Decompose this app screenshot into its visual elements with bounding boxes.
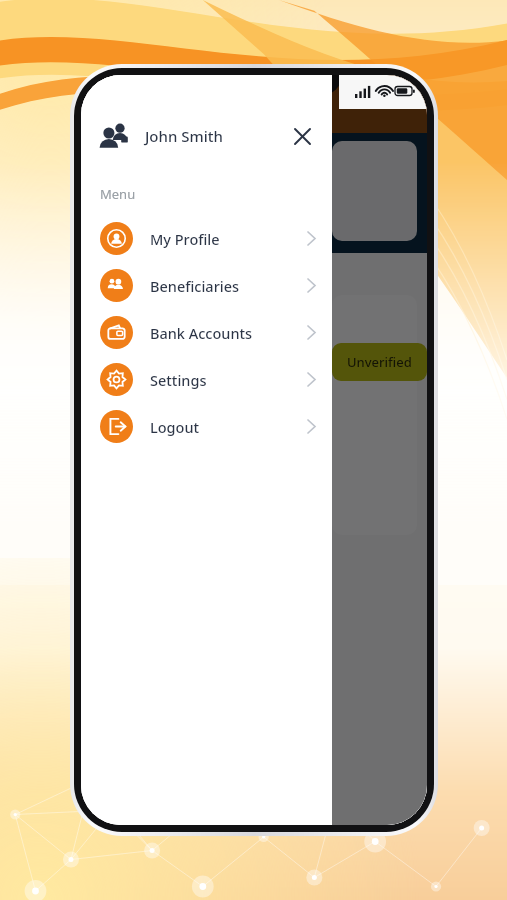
button[interactable]: Settings <box>81 356 332 403</box>
staticText: Menu <box>100 185 136 203</box>
staticText: Settings <box>150 370 207 390</box>
staticText: Beneficiaries <box>150 276 240 296</box>
staticText: John Smith <box>145 126 223 146</box>
staticText: Logout <box>150 417 200 437</box>
staticText: Bank Accounts <box>150 323 253 343</box>
button[interactable]: Logout <box>81 403 332 450</box>
button[interactable]: Bank Accounts <box>81 309 332 356</box>
button[interactable]: John Smith <box>81 109 332 163</box>
button[interactable]: Beneficiaries <box>81 262 332 309</box>
button[interactable]: Close menu <box>286 120 318 152</box>
staticText: Unverified <box>347 353 412 371</box>
button[interactable]: My Profile <box>81 215 332 262</box>
staticText: My Profile <box>150 229 220 249</box>
